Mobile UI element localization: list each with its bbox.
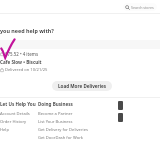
button[interactable]: Get Delivery for Deliveries — [38, 127, 88, 133]
staticText: you need help with? — [0, 27, 54, 34]
staticText: Account Details — [0, 111, 30, 117]
button[interactable]: Download app — [118, 101, 123, 110]
staticText: $75.52 • 4 items — [5, 51, 39, 57]
staticText: Let Us Help You — [0, 101, 36, 107]
button[interactable]: Become a Partner — [38, 111, 73, 117]
button[interactable]: Download app — [118, 113, 123, 122]
staticText: Delivered on 10/21/25 — [5, 67, 48, 73]
staticText: Load More Deliveries — [58, 83, 107, 89]
staticText: Doing Business — [38, 101, 73, 107]
staticText: Order History — [0, 119, 27, 125]
button[interactable]: Load More Deliveries — [52, 81, 112, 91]
staticText: Get Delivery for Deliveries — [38, 127, 88, 133]
button[interactable]: List Your Business — [38, 119, 73, 125]
staticText: Become a Partner — [38, 111, 73, 117]
staticText: Get DoorDash for Work — [38, 135, 84, 141]
staticText: Search stores — [131, 5, 154, 10]
staticText: Help — [0, 127, 9, 133]
button[interactable]: Help — [0, 127, 9, 133]
button[interactable]: Get DoorDash for Work — [38, 135, 84, 141]
other: Brand logo — [1, 39, 15, 58]
button[interactable]: Search — [123, 3, 157, 11]
staticText: Cafe Slow • Biscuit — [0, 59, 42, 65]
button[interactable]: Order History — [0, 119, 27, 125]
staticText: List Your Business — [38, 119, 73, 125]
button[interactable]: Account Details — [0, 111, 30, 117]
